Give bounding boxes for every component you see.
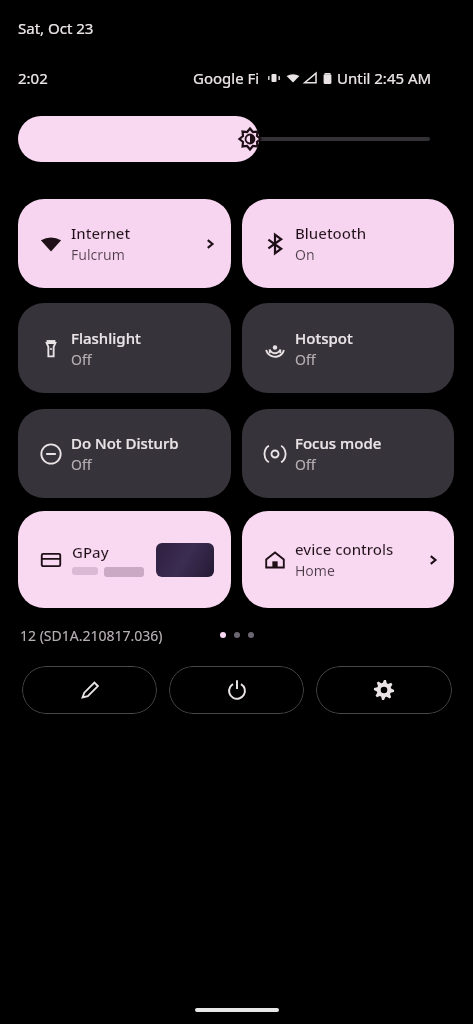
button[interactable]: Focus mode	[242, 409, 454, 498]
staticText: Do Not Disturb	[71, 433, 179, 453]
staticText: Off	[71, 455, 92, 474]
staticText: Bluetooth	[295, 223, 367, 243]
button[interactable]: Bluetooth	[242, 199, 454, 288]
button[interactable]: Internet	[18, 199, 231, 288]
staticText: Hotspot	[295, 328, 353, 348]
button[interactable]: evice controls	[242, 511, 454, 608]
staticText: Internet	[71, 223, 131, 243]
staticText: GPay	[72, 542, 109, 562]
staticText: Flashlight	[71, 328, 141, 348]
staticText: Off	[295, 350, 316, 369]
button[interactable]: Hotspot	[242, 303, 454, 393]
button[interactable]: Power	[169, 666, 304, 714]
staticText: Sat, Oct 23	[18, 18, 94, 38]
staticText: 2:02	[18, 68, 48, 88]
staticText: 12 (SD1A.210817.036)	[20, 626, 163, 645]
staticText: Until 2:45 AM	[337, 68, 432, 88]
staticText: Off	[295, 455, 316, 474]
staticText: Google Fi	[193, 68, 260, 88]
staticText: Home	[295, 561, 335, 580]
button[interactable]: Edit	[22, 666, 157, 714]
staticText: Focus mode	[295, 433, 382, 453]
button[interactable]: GPay	[18, 511, 231, 608]
staticText: On	[295, 245, 315, 264]
staticText: Fulcrum	[71, 245, 125, 264]
button[interactable]: Do Not Disturb	[18, 409, 231, 498]
staticText: evice controls	[295, 539, 394, 559]
staticText: Off	[71, 350, 92, 369]
button[interactable]: Brightness	[18, 116, 430, 162]
button[interactable]: Flashlight	[18, 303, 231, 393]
button[interactable]: Settings	[316, 666, 452, 714]
